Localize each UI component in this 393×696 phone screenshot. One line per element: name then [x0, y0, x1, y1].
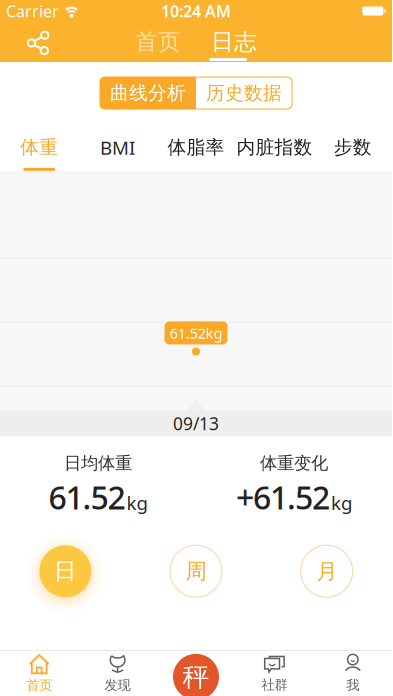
button[interactable]: 历史数据	[196, 77, 292, 109]
staticText: 10:24 AM	[161, 0, 231, 22]
button[interactable]: 体脂率	[157, 136, 235, 171]
button[interactable]: BMI	[78, 135, 157, 172]
button[interactable]: 内脏指数	[235, 136, 314, 171]
staticText: 我	[346, 677, 359, 694]
staticText: 体重	[20, 136, 58, 159]
button[interactable]: 月	[301, 545, 353, 597]
staticText: kg	[331, 490, 352, 515]
staticText: 发现	[105, 677, 131, 694]
staticText: 日均体重	[64, 452, 132, 474]
button[interactable]: 我	[314, 653, 392, 694]
button[interactable]: Share	[27, 25, 51, 59]
staticText: BMI	[100, 135, 135, 160]
staticText: 日	[54, 557, 77, 585]
staticText: Carrier	[6, 0, 59, 22]
staticText: 步数	[334, 136, 372, 159]
staticText: kg	[126, 490, 147, 515]
button[interactable]: 体重	[0, 136, 78, 171]
button[interactable]: 曲线分析	[100, 77, 196, 109]
button[interactable]: 首页	[0, 653, 78, 694]
button[interactable]: 日	[39, 545, 91, 597]
button[interactable]: 首页	[135, 28, 181, 56]
staticText: 首页	[135, 28, 181, 56]
button[interactable]: 社群	[235, 654, 314, 693]
staticText: 历史数据	[206, 81, 282, 104]
staticText: 体重变化	[260, 452, 328, 474]
staticText: 61.52	[48, 476, 125, 518]
button[interactable]: 周	[170, 545, 222, 597]
button[interactable]: 步数	[314, 136, 392, 171]
staticText: 日志	[211, 28, 257, 56]
staticText: 体脂率	[167, 136, 224, 159]
staticText: 社群	[261, 677, 287, 693]
button[interactable]: 秤	[157, 650, 235, 696]
staticText: 09/13	[173, 412, 219, 435]
staticText: 首页	[26, 677, 52, 694]
staticText: 周	[185, 558, 206, 584]
staticText: 61.52kg	[169, 323, 222, 343]
button[interactable]: 发现	[78, 653, 157, 694]
staticText: 曲线分析	[110, 81, 186, 104]
button[interactable]: 日志	[211, 28, 257, 56]
staticText: 内脏指数	[236, 136, 312, 159]
staticText: 秤	[182, 660, 209, 693]
staticText: 月	[316, 558, 337, 584]
staticText: +61.52	[236, 476, 330, 518]
